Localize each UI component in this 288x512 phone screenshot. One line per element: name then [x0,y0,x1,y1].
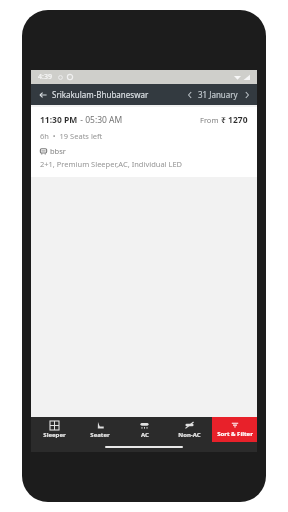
staticText: Sleeper [43,431,66,439]
button[interactable]: Previous day [184,89,195,100]
staticText: Non-AC [178,431,201,439]
staticText: AC [141,431,149,439]
staticText: ₹ 1270 [221,114,248,126]
button[interactable]: Next day [241,89,252,100]
staticText: Seater [90,431,110,439]
staticText: - 05:30 AM [78,114,123,126]
staticText: 31 January [198,89,238,100]
staticText: 11:30 PM [40,114,78,126]
staticText: Srikakulam-Bhubaneswar [52,89,149,100]
staticText: Sort & Filter [217,430,253,438]
button[interactable]: 11:30 PM [31,107,257,177]
staticText: 2+1, Premium Sleeper,AC, Individual LED [40,159,183,169]
staticText: bbsr [50,146,66,156]
button[interactable]: AC [122,417,167,442]
button[interactable]: Non-AC [167,417,212,442]
staticText: 4:39 [38,72,52,82]
button[interactable]: Sort & Filter [212,417,257,442]
button[interactable]: Seater [77,417,122,442]
button[interactable]: Back [31,90,51,100]
staticText: 6h • 19 Seats left [40,131,103,141]
button[interactable]: Sleeper [31,417,77,442]
staticText: From [200,115,221,125]
